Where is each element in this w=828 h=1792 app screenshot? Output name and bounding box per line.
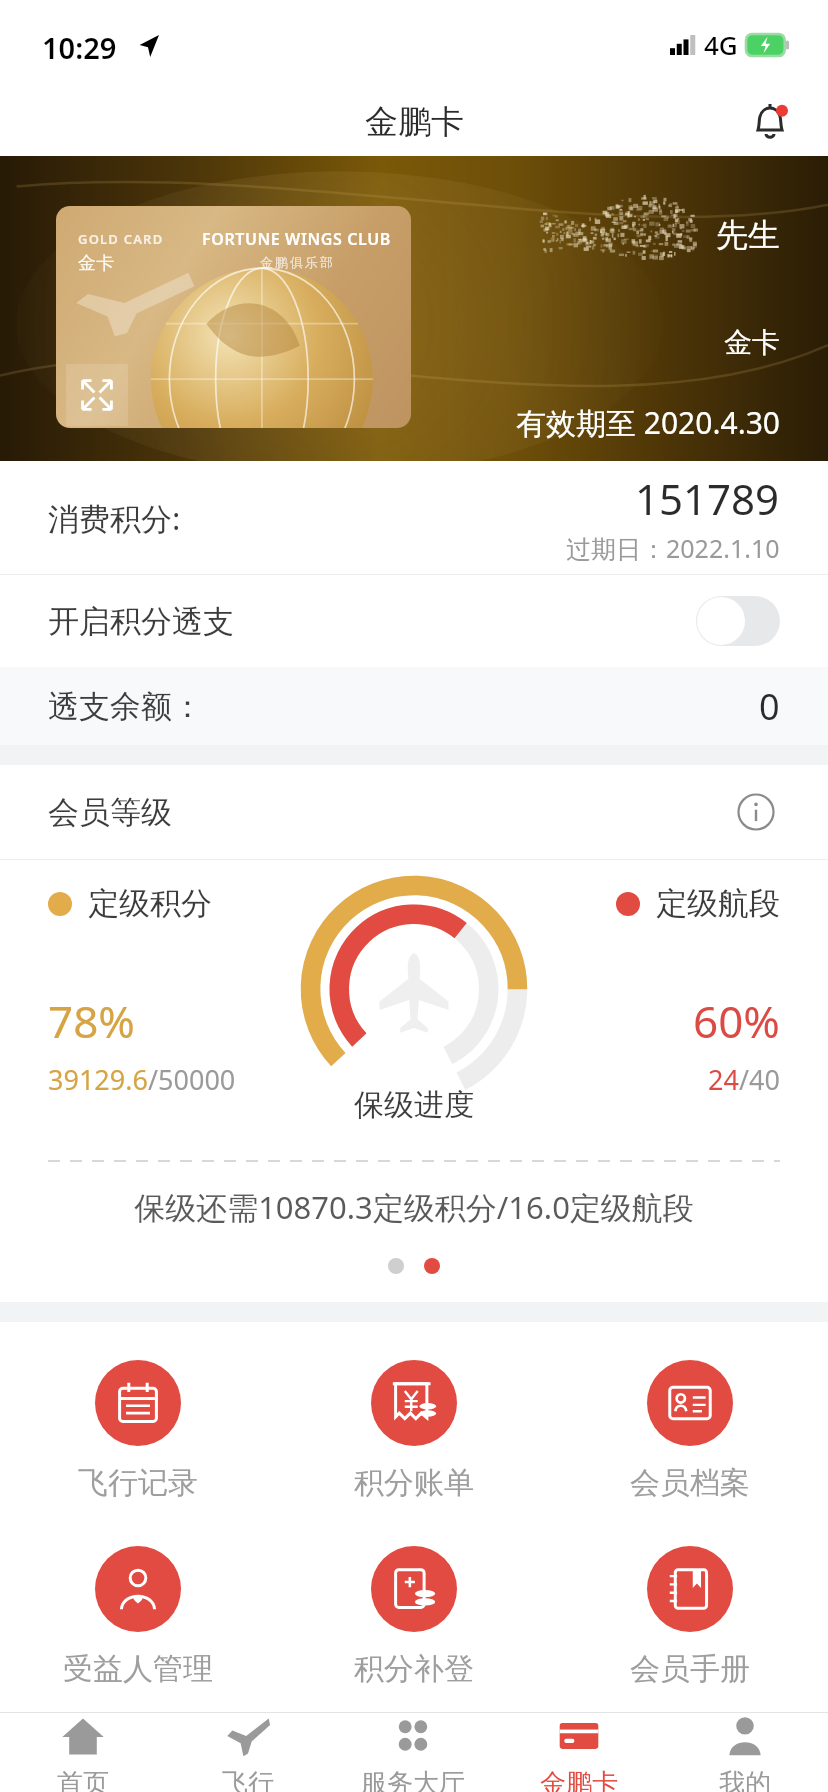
button[interactable]: 飞行: [165, 1713, 330, 1792]
button[interactable]: 消费积分:: [0, 461, 828, 574]
staticText: 积分补登: [354, 1650, 474, 1688]
staticText: /50000: [148, 1061, 236, 1098]
staticText: 保级进度: [354, 1086, 474, 1124]
staticText: 会员手册: [630, 1650, 750, 1688]
button[interactable]: 开启积分透支: [0, 575, 828, 667]
staticText: 10:29: [42, 28, 117, 67]
staticText: 24: [708, 1061, 739, 1098]
button[interactable]: 受益人管理: [0, 1542, 276, 1692]
button[interactable]: 会员手册: [552, 1542, 828, 1692]
staticText: 开启积分透支: [48, 602, 234, 641]
staticText: 消费积分:: [48, 497, 181, 539]
staticText: 积分账单: [354, 1464, 474, 1502]
staticText: 我的: [719, 1767, 771, 1792]
staticText: 60%: [693, 991, 780, 1051]
staticText: 飞行记录: [78, 1464, 198, 1502]
staticText: 4G: [704, 27, 738, 62]
button[interactable]: 飞行记录: [0, 1356, 276, 1506]
staticText: 39129.6: [48, 1061, 148, 1098]
button[interactable]: Info: [732, 788, 780, 836]
button[interactable]: Enlarge card: [66, 364, 128, 426]
staticText: 会员等级: [48, 793, 172, 832]
button[interactable]: 首页: [0, 1713, 165, 1792]
staticText: 金卡: [724, 325, 780, 360]
staticText: 过期日：2022.1.10: [566, 531, 780, 565]
button[interactable]: GOLD CARD: [0, 156, 828, 461]
button[interactable]: 金鹏卡: [496, 1713, 662, 1792]
button[interactable]: 透支余额：: [0, 667, 828, 745]
staticText: 先生: [716, 215, 780, 255]
staticText: 会员档案: [630, 1464, 750, 1502]
staticText: 0: [759, 682, 780, 731]
staticText: 首页: [57, 1767, 109, 1792]
button[interactable]: Notifications: [742, 94, 798, 150]
button[interactable]: 积分补登: [276, 1542, 552, 1692]
staticText: 金卡: [78, 252, 114, 275]
staticText: 金鹏俱乐部: [259, 254, 334, 270]
staticText: 151789: [635, 470, 780, 527]
staticText: 保级还需10870.3定级积分/16.0定级航段: [0, 1186, 828, 1228]
staticText: 金鹏卡: [540, 1767, 618, 1792]
button[interactable]: 积分账单: [276, 1356, 552, 1506]
button[interactable]: 我的: [662, 1713, 828, 1792]
button[interactable]: 会员等级: [0, 765, 828, 859]
staticText: 受益人管理: [63, 1650, 213, 1688]
staticText: 服务大厅: [361, 1767, 465, 1792]
staticText: GOLD CARD: [78, 230, 164, 248]
button[interactable]: 服务大厅: [330, 1713, 496, 1792]
staticText: /40: [739, 1061, 780, 1098]
button[interactable]: 会员档案: [552, 1356, 828, 1506]
staticText: 飞行: [222, 1767, 274, 1792]
staticText: 有效期至 2020.4.30: [516, 402, 780, 443]
staticText: 金鹏卡: [365, 101, 464, 143]
staticText: FORTUNE WINGS CLUB: [202, 228, 391, 250]
staticText: 定级积分: [88, 884, 212, 923]
staticText: 定级航段: [656, 884, 780, 923]
staticText: 透支余额：: [48, 687, 203, 726]
staticText: 78%: [48, 991, 135, 1051]
